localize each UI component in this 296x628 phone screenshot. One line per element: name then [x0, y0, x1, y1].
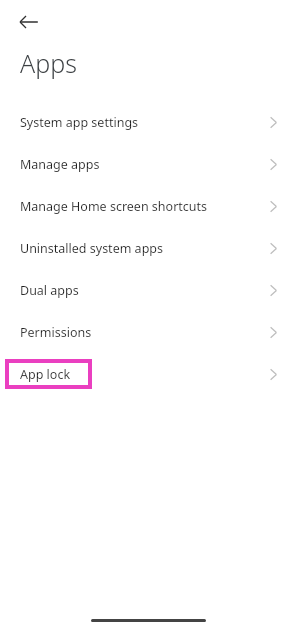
staticText: App lock: [20, 366, 71, 383]
button[interactable]: Manage Home screen shortcuts: [0, 185, 296, 227]
staticText: Manage Home screen shortcuts: [20, 198, 208, 215]
button[interactable]: App lock: [0, 353, 296, 395]
button[interactable]: Manage apps: [0, 143, 296, 185]
button[interactable]: Permissions: [0, 311, 296, 353]
staticText: Dual apps: [20, 282, 79, 299]
staticText: System app settings: [20, 114, 139, 131]
button[interactable]: Dual apps: [0, 269, 296, 311]
button[interactable]: System app settings: [0, 101, 296, 143]
staticText: Manage apps: [20, 156, 100, 173]
button[interactable]: Back: [12, 6, 44, 38]
staticText: Permissions: [20, 324, 92, 341]
staticText: Uninstalled system apps: [20, 240, 163, 257]
button[interactable]: Uninstalled system apps: [0, 227, 296, 269]
staticText: Apps: [20, 46, 77, 80]
